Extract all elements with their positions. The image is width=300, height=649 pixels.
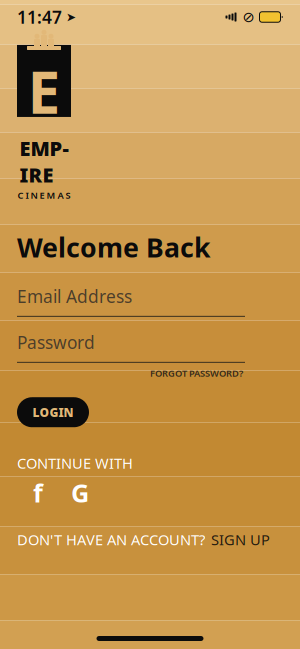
staticText: 11:47 [17, 5, 62, 28]
staticText: Email Address [17, 285, 132, 308]
button[interactable]: LOGIN [17, 397, 89, 427]
staticText: Password [17, 331, 95, 354]
staticText: f [33, 476, 43, 509]
button[interactable]: FORGOT PASSWORD? [148, 363, 245, 383]
button[interactable]: Continue with Facebook [28, 481, 48, 505]
staticText: CONTINUE WITH [17, 453, 133, 473]
staticText: ➤ [62, 10, 76, 24]
staticText: ⊘ [242, 9, 254, 25]
staticText: Welcome Back [17, 229, 211, 265]
staticText: E [27, 52, 60, 130]
button[interactable]: SIGN UP [211, 527, 270, 552]
staticText: DON'T HAVE AN ACCOUNT? [17, 530, 205, 549]
button[interactable]: Continue with Google [70, 481, 90, 505]
staticText: FORGOT PASSWORD? [150, 367, 243, 379]
staticText: LOGIN [32, 404, 73, 420]
staticText: EMPIRE [19, 135, 68, 188]
staticText: SIGN UP [211, 530, 270, 549]
staticText: C I N E M A S [17, 189, 70, 201]
staticText: G [71, 476, 89, 509]
